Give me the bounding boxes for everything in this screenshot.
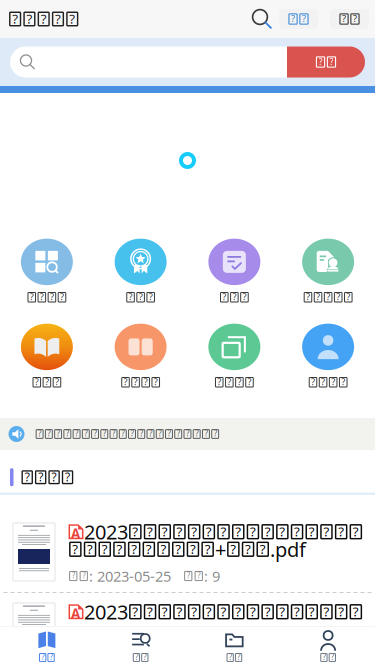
- staticText: ?: [331, 376, 335, 388]
- staticText: ?: [247, 376, 251, 388]
- staticText: ?: [103, 428, 106, 439]
- staticText: ?: [38, 469, 43, 485]
- staticText: 2023: [84, 518, 128, 545]
- staticText: ?: [302, 12, 306, 25]
- staticText: ?: [353, 12, 357, 25]
- staticText: ?: [75, 428, 78, 439]
- button[interactable]: ?: [0, 626, 94, 667]
- staticText: ?: [195, 428, 198, 439]
- staticText: ?: [123, 376, 127, 388]
- staticText: ?: [87, 540, 93, 558]
- staticText: ?: [250, 602, 256, 620]
- staticText: .pdf: [270, 536, 306, 563]
- button[interactable]: ?: [0, 238, 94, 303]
- staticText: ?: [50, 652, 53, 662]
- button[interactable]: ?: [281, 626, 375, 667]
- staticText: ?: [323, 602, 329, 620]
- staticText: ?: [131, 540, 137, 558]
- staticText: ?: [82, 570, 85, 581]
- staticText: : 2023-05-25: [89, 629, 171, 648]
- staticText: ?: [47, 428, 50, 439]
- staticText: ?: [55, 10, 61, 27]
- button[interactable]: ?: [287, 46, 365, 77]
- staticText: ?: [341, 376, 345, 388]
- button[interactable]: ?: [281, 238, 375, 303]
- staticText: ?: [135, 652, 138, 662]
- staticText: ?: [229, 652, 232, 662]
- staticText: ?: [154, 376, 158, 388]
- staticText: ?: [186, 428, 189, 439]
- button[interactable]: ?: [94, 238, 188, 303]
- staticText: ?: [311, 376, 315, 388]
- staticText: ?: [322, 652, 325, 662]
- staticText: ?: [134, 376, 138, 388]
- staticText: : 2023-05-25: [89, 566, 171, 586]
- staticText: ?: [237, 652, 240, 662]
- staticText: ?: [144, 376, 148, 388]
- button[interactable]: ?: [187, 238, 281, 303]
- staticText: ?: [130, 428, 133, 439]
- staticText: ?: [41, 652, 44, 662]
- staticText: ?: [40, 291, 44, 303]
- staticText: ?: [235, 602, 241, 620]
- staticText: +: [215, 536, 226, 563]
- staticText: ?: [187, 570, 190, 581]
- staticText: ?: [50, 291, 54, 303]
- staticText: ?: [140, 428, 143, 439]
- button[interactable]: ?: [330, 9, 369, 29]
- staticText: ?: [26, 10, 32, 27]
- staticText: ?: [232, 291, 236, 303]
- staticText: ?: [265, 522, 271, 540]
- staticText: ?: [30, 291, 34, 303]
- staticText: ?: [175, 540, 181, 558]
- staticText: ?: [12, 10, 18, 27]
- button[interactable]: ?: [279, 9, 318, 29]
- staticText: ?: [121, 428, 124, 439]
- button[interactable]: ?: [0, 418, 375, 450]
- staticText: ?: [309, 602, 315, 620]
- staticText: A: [71, 524, 80, 542]
- staticText: ?: [306, 291, 310, 303]
- staticText: ?: [60, 291, 64, 303]
- button[interactable]: ?: [94, 323, 188, 388]
- staticText: ?: [279, 522, 285, 540]
- staticText: ?: [139, 291, 143, 303]
- button[interactable]: ?: [187, 626, 281, 667]
- staticText: ?: [279, 602, 285, 620]
- staticText: 2023: [84, 598, 128, 625]
- staticText: ?: [176, 602, 182, 620]
- staticText: ?: [205, 540, 211, 558]
- staticText: ?: [206, 522, 212, 540]
- staticText: ?: [149, 428, 152, 439]
- staticText: ?: [329, 55, 333, 68]
- staticText: ?: [204, 428, 207, 439]
- staticText: ?: [147, 602, 153, 620]
- button[interactable]: Search: [245, 0, 279, 38]
- staticText: ?: [323, 522, 329, 540]
- staticText: ?: [230, 540, 236, 558]
- button[interactable]: A: [0, 593, 375, 654]
- button[interactable]: ?: [187, 323, 281, 388]
- button[interactable]: [10, 46, 287, 77]
- button[interactable]: ?: [94, 626, 188, 667]
- staticText: ?: [102, 540, 108, 558]
- staticText: ?: [116, 540, 122, 558]
- staticText: ?: [321, 376, 325, 388]
- staticText: ?: [316, 291, 320, 303]
- staticText: ?: [346, 291, 350, 303]
- staticText: ?: [294, 602, 300, 620]
- staticText: ?: [41, 10, 47, 27]
- button[interactable]: A: [0, 495, 375, 593]
- button[interactable]: ?: [0, 323, 94, 388]
- staticText: ?: [160, 540, 166, 558]
- staticText: ?: [149, 291, 153, 303]
- staticText: ?: [227, 376, 231, 388]
- staticText: ?: [318, 55, 322, 68]
- button[interactable]: ?: [281, 323, 375, 388]
- staticText: ?: [57, 428, 60, 439]
- staticText: ?: [66, 428, 69, 439]
